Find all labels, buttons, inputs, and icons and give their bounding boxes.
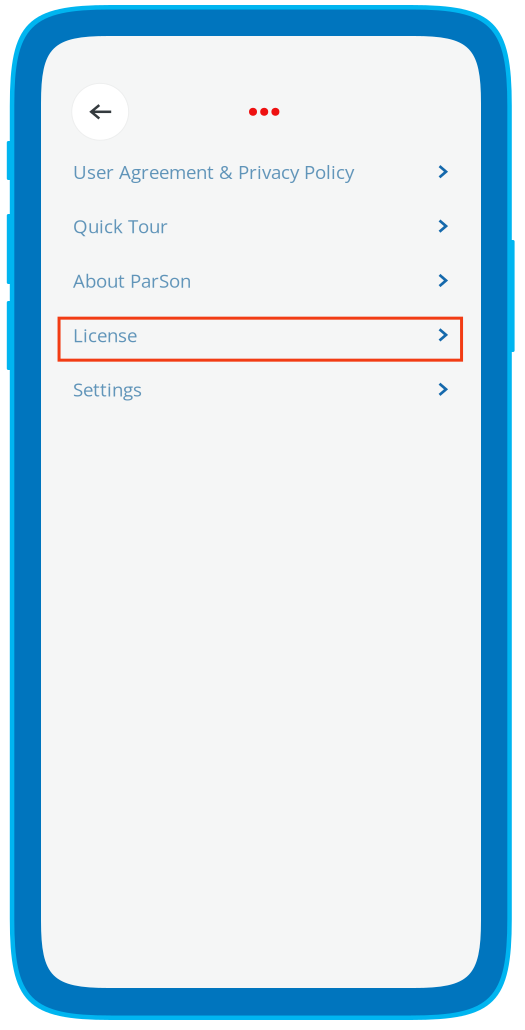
staticText: Quick Tour	[73, 213, 168, 239]
button[interactable]: More options	[234, 94, 294, 130]
button[interactable]: About ParSon	[41, 253, 481, 308]
staticText: License	[73, 322, 137, 348]
button[interactable]: Settings	[41, 362, 481, 416]
staticText: Settings	[73, 377, 142, 402]
button[interactable]: Quick Tour	[41, 199, 481, 253]
staticText: About ParSon	[73, 268, 191, 293]
button[interactable]: User Agreement & Privacy Policy	[41, 144, 481, 199]
button[interactable]: License	[41, 308, 481, 362]
button[interactable]: Back	[72, 83, 129, 140]
staticText: User Agreement & Privacy Policy	[73, 159, 354, 184]
